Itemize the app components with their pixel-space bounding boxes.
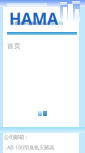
staticText: HAMA [9,8,58,29]
staticText: 公司邮箱： [4,134,29,141]
button[interactable]: Thumbnail 2 [43,111,47,116]
staticText: 首页 [7,42,21,50]
button[interactable]: Thumbnail 1 [38,111,42,116]
staticText: 哈爾濱華瑞醫療器械有限公司 [11,21,63,26]
staticText: · AB-100型臭氧灭菌器 [5,144,54,151]
button[interactable]: 首页 [7,42,21,50]
